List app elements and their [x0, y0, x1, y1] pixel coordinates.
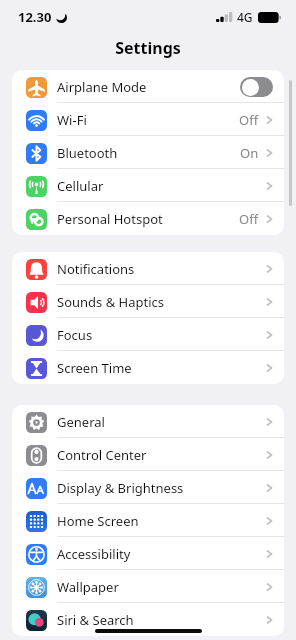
- staticText: On: [240, 144, 259, 162]
- staticText: Display & Brightness: [57, 479, 184, 497]
- button[interactable]: Wallpaper: [12, 570, 284, 603]
- staticText: 4G: [237, 9, 253, 25]
- staticText: Cellular: [57, 177, 104, 195]
- button[interactable]: Accessibility: [12, 537, 284, 570]
- staticText: 12.30: [18, 8, 52, 26]
- staticText: Personal Hotspot: [57, 210, 163, 228]
- button[interactable]: Wi-Fi: [12, 103, 284, 136]
- button[interactable]: Cellular: [12, 169, 284, 202]
- button[interactable]: Display & Brightness: [12, 471, 284, 504]
- staticText: Home Screen: [57, 512, 139, 530]
- staticText: Wallpaper: [57, 578, 119, 596]
- button[interactable]: Home Screen: [12, 504, 284, 537]
- staticText: Wi-Fi: [57, 111, 87, 129]
- staticText: Accessibility: [57, 545, 131, 563]
- staticText: Settings: [115, 37, 181, 59]
- button[interactable]: Siri & Search: [12, 603, 284, 636]
- button[interactable]: Airplane Mode: [12, 70, 284, 103]
- button[interactable]: Screen Time: [12, 351, 284, 384]
- staticText: Off: [239, 111, 259, 129]
- button[interactable]: Personal Hotspot: [12, 202, 284, 235]
- button[interactable]: General: [12, 405, 284, 438]
- staticText: Control Center: [57, 446, 147, 464]
- button[interactable]: Bluetooth: [12, 136, 284, 169]
- staticText: Bluetooth: [57, 144, 118, 162]
- staticText: Airplane Mode: [57, 78, 147, 96]
- button[interactable]: Control Center: [12, 438, 284, 471]
- staticText: Off: [239, 210, 259, 228]
- staticText: Focus: [57, 326, 93, 344]
- button[interactable]: Focus: [12, 318, 284, 351]
- staticText: General: [57, 413, 105, 431]
- staticText: Sounds & Haptics: [57, 293, 165, 311]
- staticText: Siri & Search: [57, 611, 134, 629]
- button[interactable]: Notifications: [12, 252, 284, 285]
- staticText: Screen Time: [57, 359, 132, 377]
- staticText: Notifications: [57, 260, 135, 278]
- button[interactable]: Airplane Mode toggle, off: [240, 77, 273, 97]
- button[interactable]: Sounds & Haptics: [12, 285, 284, 318]
